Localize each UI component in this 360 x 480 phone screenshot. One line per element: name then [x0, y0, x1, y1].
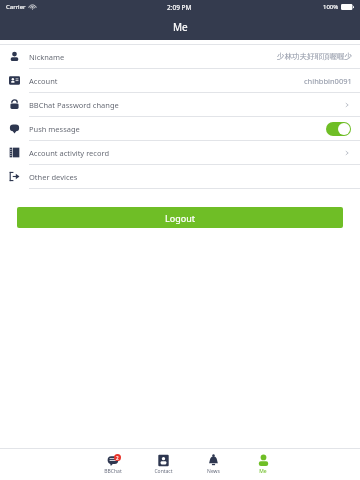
button[interactable]: Logout	[17, 207, 343, 228]
staticText: Push message	[29, 124, 80, 134]
staticText: Me	[259, 468, 267, 475]
staticText: Carrier	[6, 3, 26, 11]
staticText: Other devices	[29, 172, 78, 182]
staticText: Me	[173, 20, 188, 34]
staticText: Account activity record	[29, 148, 110, 158]
staticText: chihbbin0091	[304, 76, 352, 86]
staticText: 100%	[323, 3, 339, 11]
staticText: BBChat Password change	[29, 100, 119, 110]
staticText: 2:09 PM	[167, 3, 192, 12]
staticText: Contact	[154, 468, 173, 475]
button[interactable]: BBChat Password change	[0, 93, 360, 117]
staticText: 2	[116, 455, 119, 461]
staticText: Account	[29, 76, 58, 86]
button[interactable]: Account	[0, 69, 360, 93]
staticText: BBChat	[104, 468, 122, 475]
button[interactable]: Nickname	[0, 45, 360, 69]
staticText: Nickname	[29, 52, 65, 62]
button[interactable]: Me	[238, 454, 288, 475]
button[interactable]: Push message	[0, 117, 360, 141]
button[interactable]: Push message toggle	[326, 122, 351, 136]
button[interactable]: News	[188, 454, 238, 475]
staticText: 少林功夫好耶頂喔喔少	[277, 52, 352, 61]
staticText: News	[207, 468, 220, 475]
button[interactable]: Other devices	[0, 165, 360, 189]
button[interactable]: 2	[88, 454, 138, 475]
button[interactable]: Contact	[138, 454, 188, 475]
button[interactable]: Account activity record	[0, 141, 360, 165]
staticText: Logout	[165, 212, 195, 224]
